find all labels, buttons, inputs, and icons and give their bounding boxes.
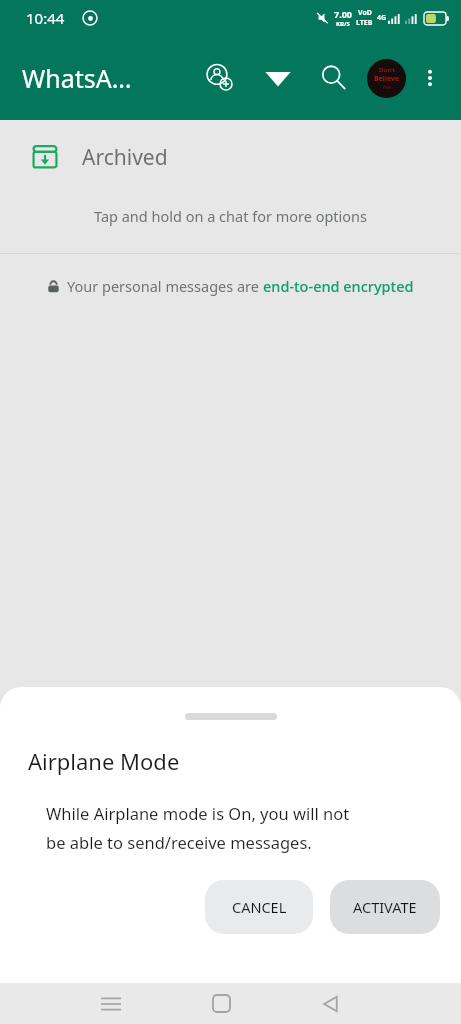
- staticText: WhatsA…: [22, 61, 132, 95]
- staticText: 4G: [377, 13, 387, 23]
- button[interactable]: Profile: [365, 57, 407, 99]
- staticText: CANCEL: [232, 897, 287, 917]
- button[interactable]: Home: [198, 983, 244, 1024]
- button[interactable]: Recent apps: [88, 983, 134, 1024]
- button[interactable]: Archived: [0, 120, 461, 194]
- staticText: Tap and hold on a chat for more options: [0, 206, 461, 226]
- staticText: 7.00: [334, 8, 352, 20]
- button[interactable]: Back: [308, 983, 354, 1024]
- staticText: LTEB: [356, 18, 373, 28]
- staticText: KB/S: [336, 20, 350, 28]
- staticText: Don't: [379, 66, 396, 74]
- staticText: Your personal messages are: [67, 276, 263, 296]
- button[interactable]: Add contact: [199, 57, 241, 99]
- staticText: Archived: [82, 143, 168, 172]
- button[interactable]: CANCEL: [205, 880, 313, 934]
- button[interactable]: Status: [257, 57, 299, 99]
- staticText: ACTIVATE: [353, 897, 417, 917]
- staticText: me: [383, 84, 391, 91]
- staticText: 10:44: [26, 8, 65, 28]
- button[interactable]: More options: [413, 61, 447, 95]
- button[interactable]: Search: [313, 57, 355, 99]
- staticText: Airplane Mode: [28, 746, 180, 776]
- staticText: While Airplane mode is On, you will not …: [46, 802, 350, 854]
- button[interactable]: ACTIVATE: [330, 880, 440, 934]
- staticText: Believe: [374, 74, 400, 84]
- staticText: end-to-end encrypted: [263, 276, 414, 296]
- staticText: VoD: [358, 8, 372, 18]
